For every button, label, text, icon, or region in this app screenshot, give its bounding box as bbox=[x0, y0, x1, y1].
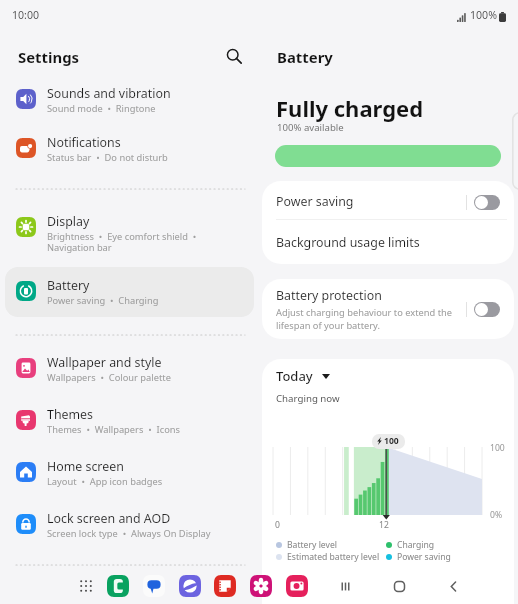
staticText: Sound mode • Ringtone bbox=[47, 102, 156, 115]
staticText: 0 bbox=[275, 519, 280, 531]
staticText: Background usage limits bbox=[276, 234, 420, 251]
button[interactable]: Home bbox=[385, 572, 413, 600]
button[interactable] bbox=[5, 203, 254, 253]
staticText: Layout • App icon badges bbox=[47, 475, 163, 488]
staticText: Battery protection bbox=[276, 287, 382, 304]
button[interactable]: App bbox=[107, 575, 129, 597]
staticText: Adjust charging behaviour to extend the … bbox=[276, 306, 453, 332]
staticText: Sounds and vibration bbox=[47, 85, 171, 102]
staticText: 0% bbox=[490, 509, 503, 521]
button[interactable] bbox=[5, 267, 254, 317]
button[interactable] bbox=[5, 124, 254, 174]
button[interactable]: Background usage limits bbox=[262, 220, 514, 264]
staticText: Lock screen and AOD bbox=[47, 510, 171, 527]
button[interactable]: Recents bbox=[331, 572, 359, 600]
button[interactable]: Back bbox=[439, 572, 467, 600]
button[interactable]: Toggle off bbox=[474, 302, 500, 317]
staticText: 100 bbox=[490, 442, 505, 454]
button[interactable]: App bbox=[250, 575, 272, 597]
button[interactable]: Search bbox=[221, 43, 247, 69]
button[interactable] bbox=[5, 500, 254, 550]
button[interactable]: Today bbox=[272, 365, 336, 387]
button[interactable] bbox=[5, 344, 254, 394]
staticText: Wallpaper and style bbox=[47, 354, 162, 371]
staticText: Themes bbox=[47, 406, 94, 423]
staticText: Status bar • Do not disturb bbox=[47, 151, 168, 164]
button[interactable]: Battery protection bbox=[262, 279, 514, 339]
button[interactable]: App bbox=[286, 575, 308, 597]
button[interactable]: App bbox=[143, 575, 165, 597]
staticText: Battery bbox=[47, 277, 90, 294]
staticText: Home screen bbox=[47, 458, 124, 475]
staticText: Charging bbox=[397, 539, 435, 551]
button[interactable]: App bbox=[179, 575, 201, 597]
staticText: 12 bbox=[379, 519, 389, 531]
staticText: Today bbox=[276, 367, 313, 385]
button[interactable]: Toggle off bbox=[474, 195, 500, 210]
staticText: Charging now bbox=[276, 392, 340, 405]
staticText: Power saving bbox=[276, 193, 354, 210]
staticText: Power saving • Charging bbox=[47, 294, 159, 307]
button[interactable]: Power saving bbox=[262, 181, 514, 219]
staticText: Battery bbox=[277, 47, 333, 67]
staticText: Battery level bbox=[287, 539, 337, 551]
staticText: Brightness • Eye comfort shield • Naviga… bbox=[47, 230, 197, 254]
staticText: 100% bbox=[470, 8, 497, 22]
button[interactable] bbox=[5, 448, 254, 498]
staticText: 100 bbox=[384, 435, 399, 447]
staticText: 10:00 bbox=[12, 8, 40, 22]
button[interactable] bbox=[5, 396, 254, 446]
staticText: Fully charged bbox=[276, 93, 424, 123]
button[interactable]: All apps bbox=[75, 575, 97, 597]
button[interactable] bbox=[5, 75, 254, 125]
staticText: Themes • Wallpapers • Icons bbox=[47, 423, 180, 436]
staticText: Notifications bbox=[47, 134, 121, 151]
staticText: Estimated battery level bbox=[287, 551, 380, 563]
staticText: 100% available bbox=[277, 121, 344, 134]
staticText: Settings bbox=[18, 47, 80, 67]
staticText: Wallpapers • Colour palette bbox=[47, 371, 171, 384]
button[interactable]: App bbox=[214, 575, 236, 597]
staticText: Screen lock type • Always On Display bbox=[47, 527, 211, 540]
staticText: Power saving bbox=[397, 551, 451, 563]
staticText: Display bbox=[47, 213, 90, 230]
